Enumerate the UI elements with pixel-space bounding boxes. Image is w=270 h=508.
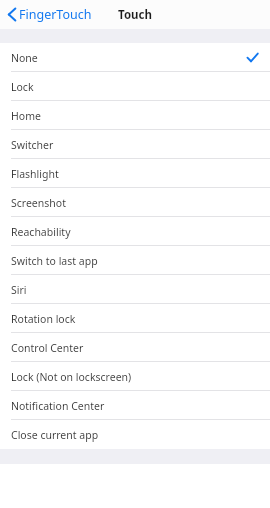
button[interactable]: Reachability: [0, 217, 270, 246]
staticText: Close current app: [11, 428, 99, 442]
staticText: Home: [11, 109, 41, 123]
button[interactable]: Flashlight: [0, 159, 270, 188]
button[interactable]: Rotation lock: [0, 304, 270, 333]
button[interactable]: FingerTouch: [0, 0, 100, 29]
button[interactable]: Switcher: [0, 130, 270, 159]
button[interactable]: Lock: [0, 72, 270, 101]
button[interactable]: Close current app: [0, 420, 270, 449]
staticText: Screenshot: [11, 196, 66, 210]
staticText: Rotation lock: [11, 312, 76, 326]
staticText: Reachability: [11, 225, 71, 239]
staticText: Lock (Not on lockscreen): [11, 370, 132, 384]
staticText: FingerTouch: [19, 6, 92, 23]
button[interactable]: Siri: [0, 275, 270, 304]
staticText: None: [11, 51, 38, 65]
button[interactable]: None: [0, 43, 270, 72]
button[interactable]: Notification Center: [0, 391, 270, 420]
button[interactable]: Screenshot: [0, 188, 270, 217]
button[interactable]: Control Center: [0, 333, 270, 362]
button[interactable]: Lock (Not on lockscreen): [0, 362, 270, 391]
staticText: Touch: [118, 7, 152, 23]
staticText: Switch to last app: [11, 254, 98, 268]
other: Selected: [247, 53, 258, 62]
staticText: Control Center: [11, 341, 84, 355]
staticText: Switcher: [11, 138, 54, 152]
staticText: Siri: [11, 283, 27, 297]
staticText: Flashlight: [11, 167, 59, 181]
button[interactable]: Switch to last app: [0, 246, 270, 275]
staticText: Notification Center: [11, 399, 105, 413]
staticText: Lock: [11, 80, 34, 94]
button[interactable]: Home: [0, 101, 270, 130]
